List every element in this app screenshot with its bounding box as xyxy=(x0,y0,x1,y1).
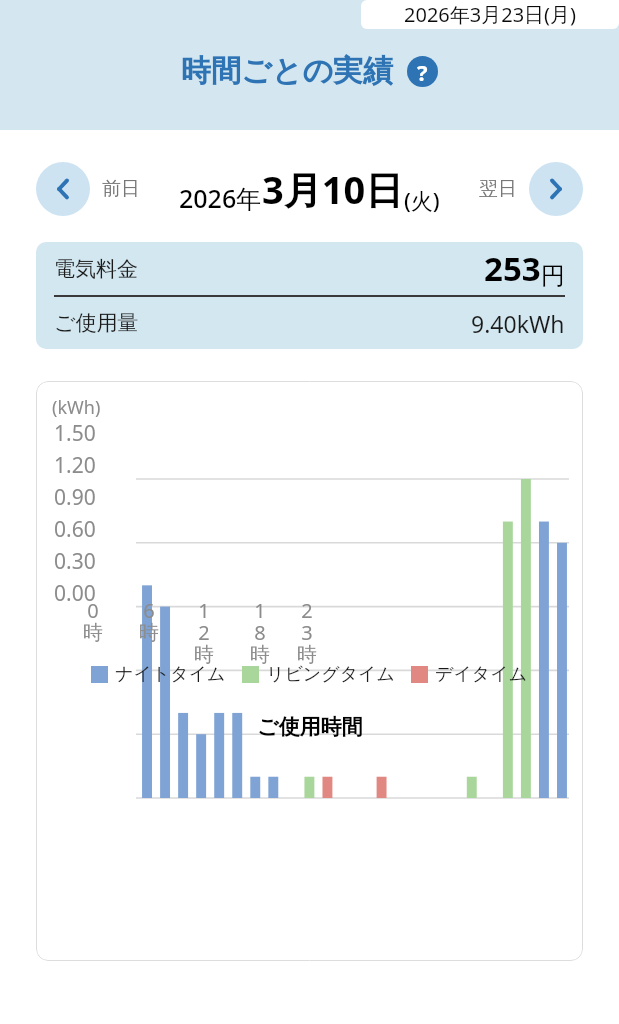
staticText: 1.20 xyxy=(54,451,96,480)
button[interactable]: ヘルプ xyxy=(407,56,438,87)
staticText: リビングタイム xyxy=(266,663,395,686)
button[interactable]: デイタイム xyxy=(411,663,528,686)
staticText: ? xyxy=(417,57,428,87)
staticText: (火) xyxy=(404,185,440,215)
staticText: ナイトタイム xyxy=(115,663,226,686)
staticText: 1 8 時 xyxy=(250,597,270,667)
staticText: 円 xyxy=(541,261,565,291)
staticText: 0 時 xyxy=(83,597,103,645)
staticText: 9.40kWh xyxy=(471,308,565,339)
button[interactable]: 電気料金 xyxy=(36,242,583,349)
staticText: 0.60 xyxy=(54,515,96,544)
staticText: 0.00 xyxy=(54,579,96,608)
staticText: 0.30 xyxy=(54,547,96,576)
staticText: (kWh) xyxy=(52,395,101,420)
staticText: 電気料金 xyxy=(54,256,138,282)
staticText: 2026年 xyxy=(179,181,262,215)
button[interactable]: リビングタイム xyxy=(242,663,395,686)
staticText: 1 2 時 xyxy=(194,597,214,667)
staticText: 2 3 時 xyxy=(297,597,317,667)
staticText: 2026年3月23日(月) xyxy=(404,1,577,28)
button[interactable]: ナイトタイム xyxy=(91,663,226,686)
staticText: 翌日 xyxy=(479,177,517,201)
staticText: 6 時 xyxy=(139,597,159,645)
staticText: 253 xyxy=(484,246,541,291)
staticText: デイタイム xyxy=(435,663,528,686)
button[interactable]: 前日 xyxy=(36,162,90,216)
staticText: ご使用時間 xyxy=(257,714,363,740)
staticText: 0.90 xyxy=(54,483,96,512)
staticText: 前日 xyxy=(102,177,140,201)
staticText: 時間ごとの実績 xyxy=(181,52,394,90)
staticText: 1.50 xyxy=(54,419,96,448)
button[interactable]: 翌日 xyxy=(529,162,583,216)
staticText: ご使用量 xyxy=(54,310,139,336)
staticText: 3月10日 xyxy=(262,163,404,215)
